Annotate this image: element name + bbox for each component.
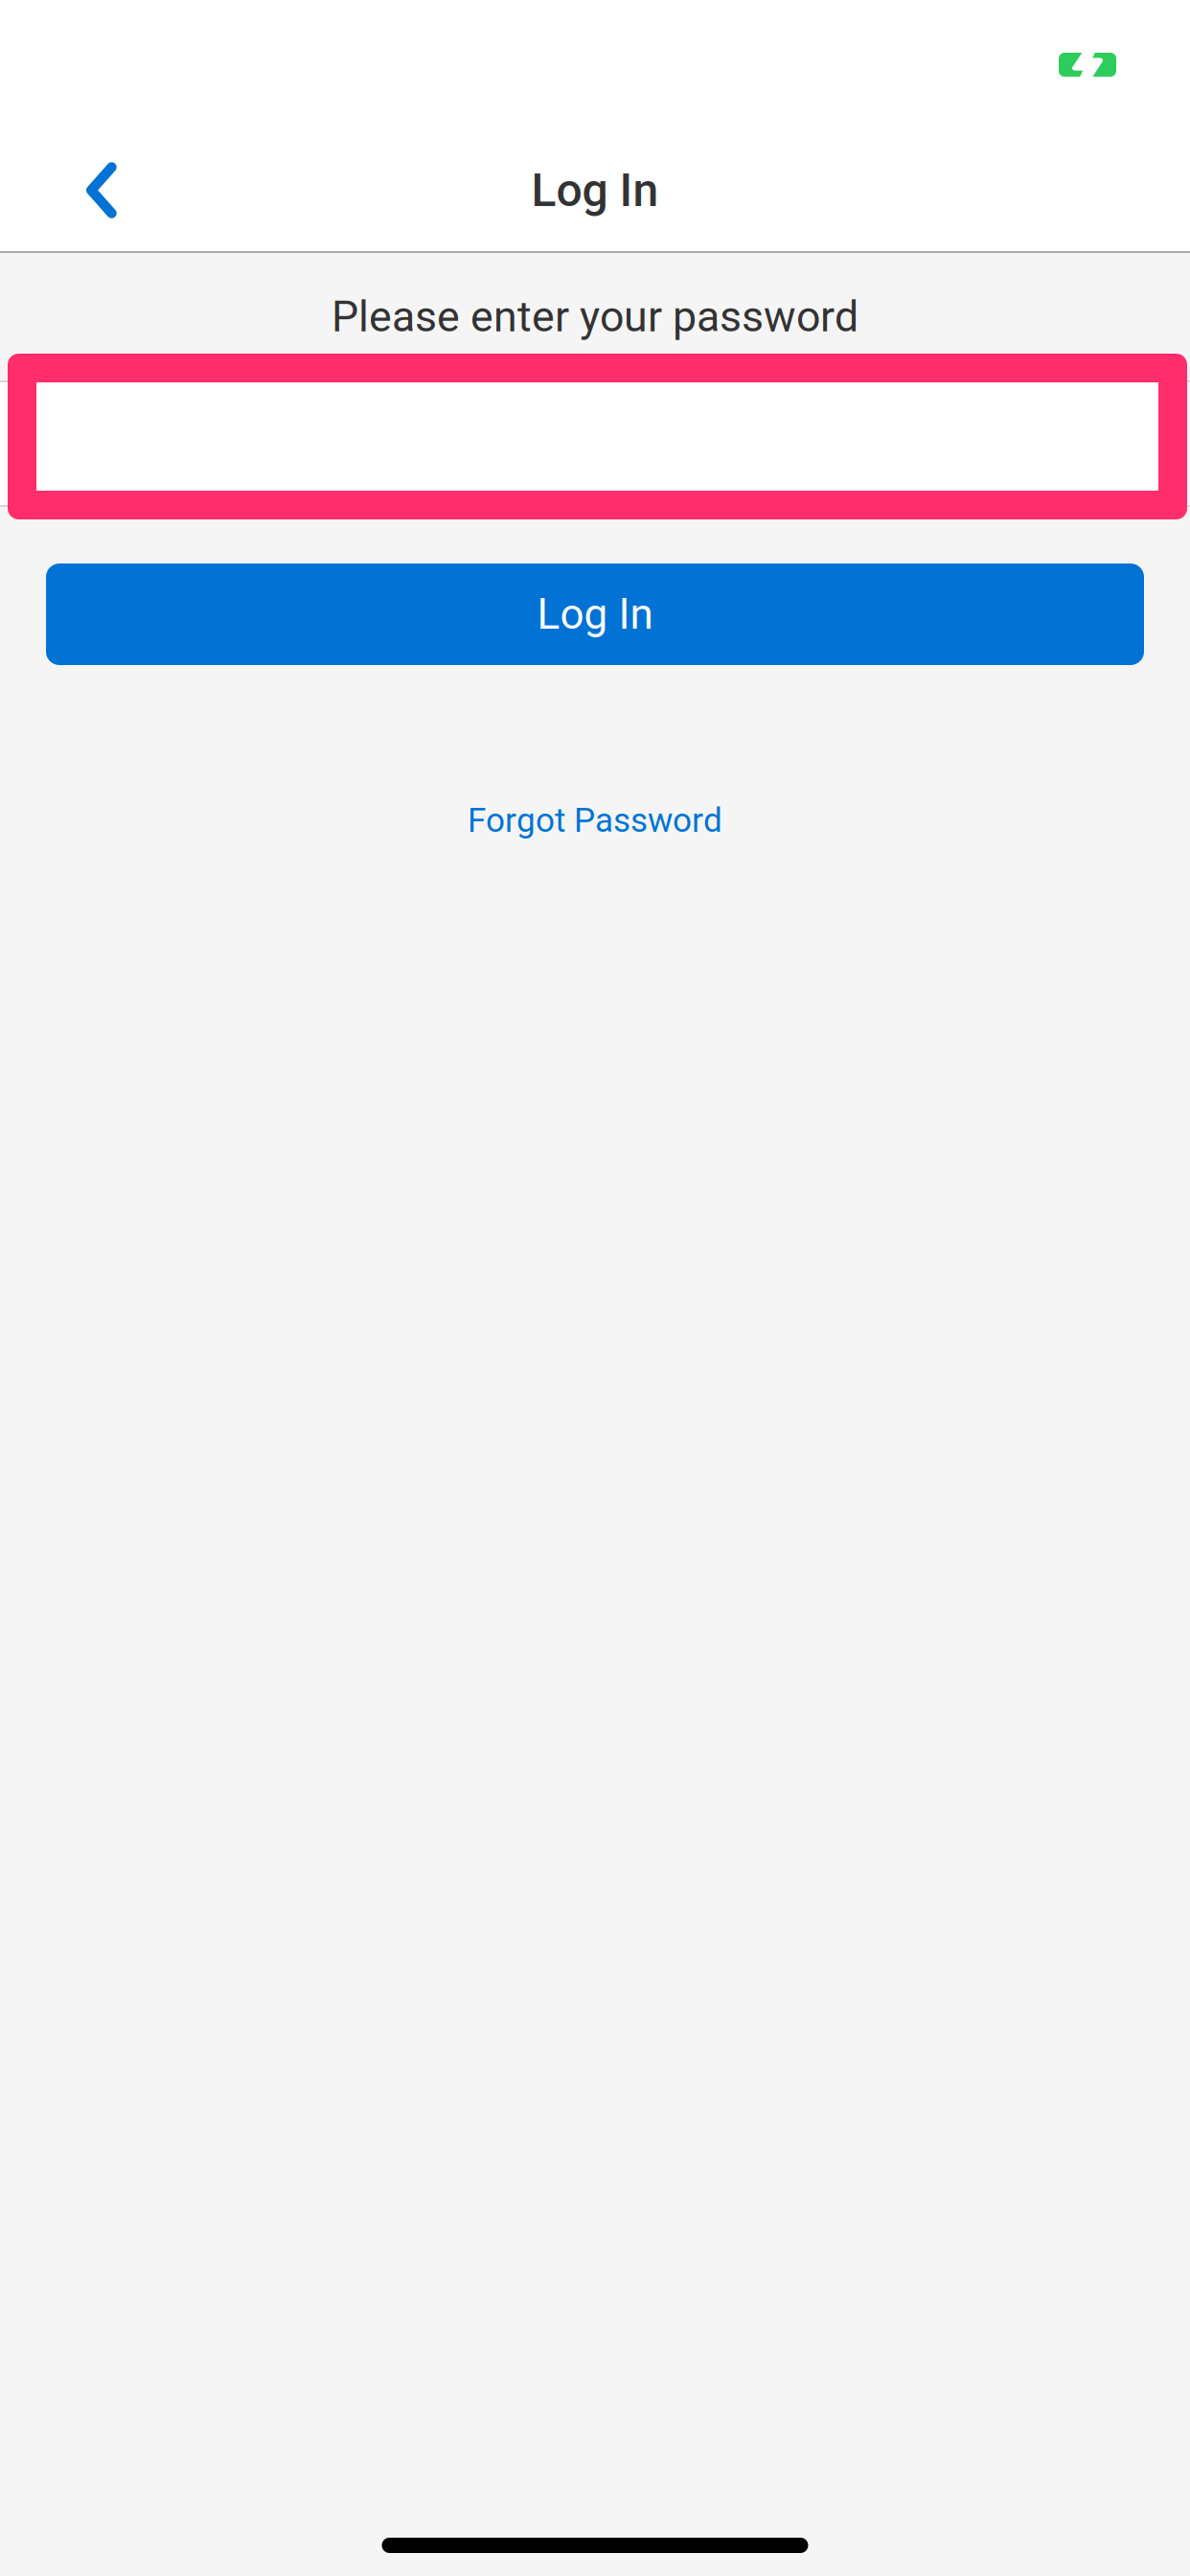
button[interactable]: Password	[0, 380, 1190, 507]
staticText: Log In	[531, 163, 659, 217]
staticText: Please enter your password	[332, 292, 858, 342]
button[interactable]: Back	[0, 130, 201, 251]
button[interactable]: Forgot Password	[0, 779, 1190, 862]
staticText: Forgot Password	[468, 801, 722, 840]
button[interactable]: Log In	[46, 563, 1144, 665]
staticText: Log In	[537, 590, 653, 639]
